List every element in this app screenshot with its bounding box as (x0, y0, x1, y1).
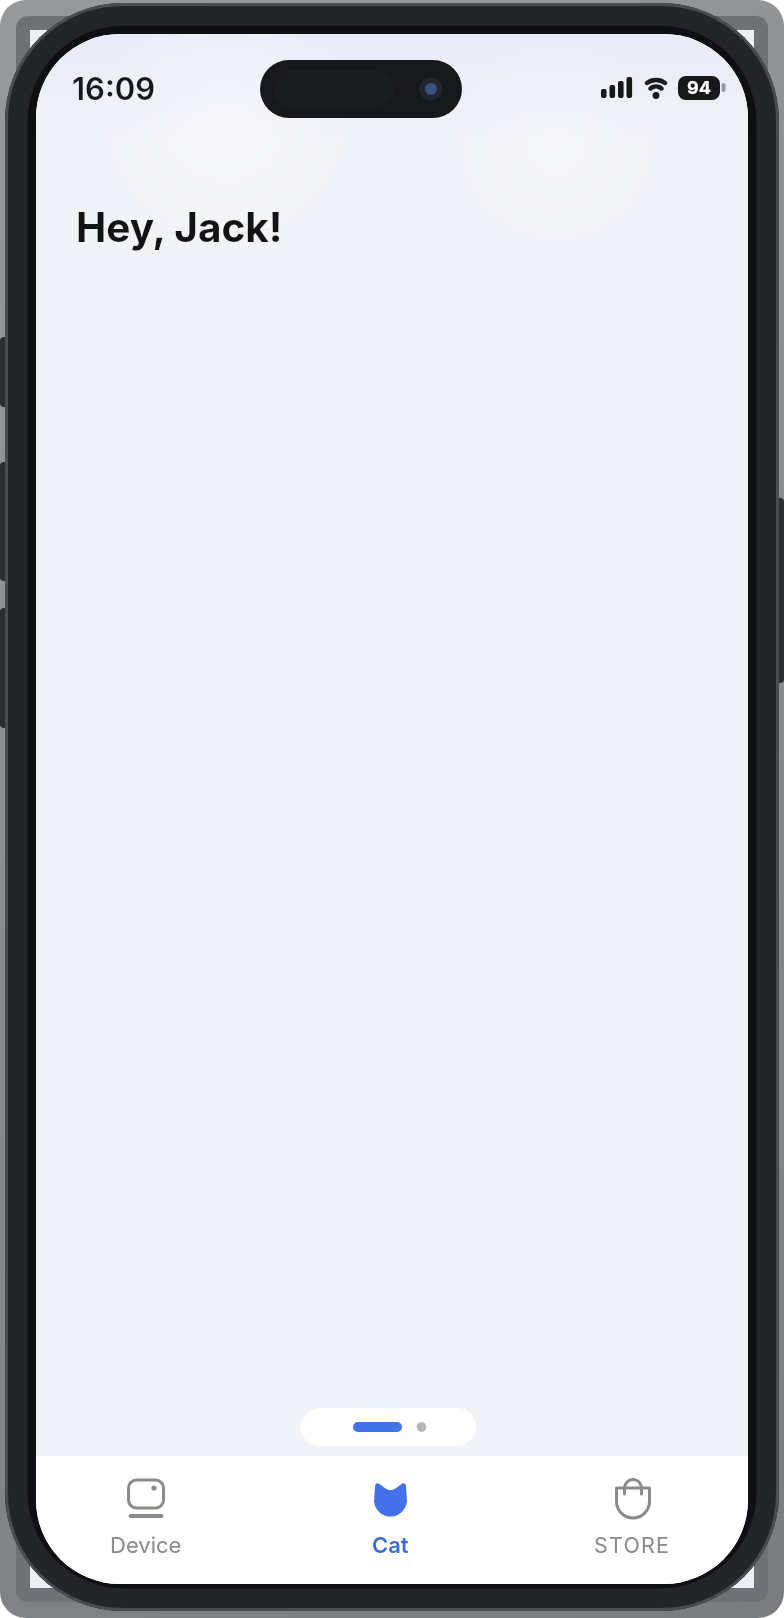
button[interactable]: Cat (321, 1456, 460, 1584)
button[interactable]: Device (76, 1456, 215, 1584)
staticText: Hey, Jack! (76, 203, 283, 252)
staticText: Device (110, 1532, 182, 1559)
staticText: 16:09 (72, 70, 156, 108)
staticText: STORE (594, 1532, 671, 1558)
staticText: 94 (687, 77, 711, 99)
staticText: Cat (372, 1532, 409, 1559)
button[interactable]: STORE (563, 1456, 702, 1584)
